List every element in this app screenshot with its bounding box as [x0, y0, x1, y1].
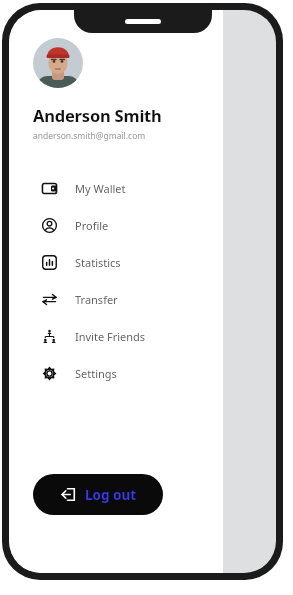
staticText: Settings	[75, 366, 117, 381]
button[interactable]: Statistics	[9, 244, 223, 281]
button[interactable]: Log out	[33, 474, 163, 515]
staticText: Profile	[75, 218, 109, 233]
staticText: Log out	[85, 486, 137, 504]
button[interactable]: Transfer	[9, 281, 223, 318]
staticText: Invite Friends	[75, 329, 146, 344]
staticText: anderson.smith@gmail.com	[33, 130, 146, 142]
button[interactable]: Invite Friends	[9, 318, 223, 355]
staticText: My Wallet	[75, 181, 126, 196]
staticText: Statistics	[75, 255, 121, 270]
button[interactable]: Settings	[9, 355, 223, 392]
button[interactable]: My Wallet	[9, 170, 223, 207]
staticText: Anderson Smith	[33, 104, 162, 126]
button[interactable]: Profile	[9, 207, 223, 244]
staticText: Transfer	[75, 292, 118, 307]
